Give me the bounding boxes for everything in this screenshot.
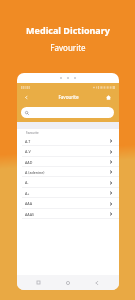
staticText: AAAS bbox=[25, 212, 35, 217]
staticText: A (adenine) bbox=[25, 170, 45, 175]
button[interactable]: A (adenine) bbox=[17, 167, 119, 177]
staticText: AAD bbox=[25, 160, 33, 165]
button[interactable]: AAAS bbox=[17, 209, 119, 219]
button[interactable]: AAA bbox=[17, 198, 119, 209]
staticText: Medical Dictionary bbox=[26, 24, 110, 36]
button[interactable]: A+ bbox=[17, 188, 119, 198]
button[interactable]: A-V bbox=[17, 146, 119, 157]
button[interactable]: Search bbox=[21, 107, 114, 118]
button[interactable]: Home bbox=[61, 276, 74, 289]
button[interactable]: Back bbox=[21, 92, 32, 103]
button[interactable]: Back bbox=[90, 276, 103, 289]
staticText: A+ bbox=[25, 191, 30, 196]
staticText: Favourite bbox=[50, 42, 86, 53]
staticText: AAA bbox=[25, 201, 33, 206]
button[interactable]: Recents bbox=[32, 276, 45, 289]
staticText: A-T bbox=[25, 139, 31, 144]
button[interactable]: A-T bbox=[17, 136, 119, 146]
staticText: A-V bbox=[25, 149, 31, 154]
button[interactable]: Home bbox=[103, 92, 114, 103]
button[interactable]: A- bbox=[17, 177, 119, 188]
button[interactable]: AAD bbox=[17, 157, 119, 167]
staticText: Favourite bbox=[58, 94, 79, 100]
staticText: A- bbox=[25, 180, 29, 185]
staticText: Favourite bbox=[26, 131, 39, 135]
